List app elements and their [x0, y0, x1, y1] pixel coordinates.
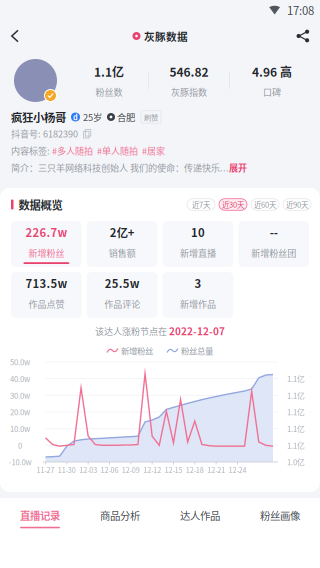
button[interactable]: 商品分析 [80, 506, 160, 530]
staticText: 0 [18, 440, 22, 451]
button[interactable]: 达人作品 [160, 506, 240, 530]
staticText: 作品评论 [104, 297, 140, 310]
staticText: 11-27 [36, 465, 54, 475]
staticText: 12-03 [79, 465, 97, 475]
button[interactable]: 3 [162, 272, 233, 318]
staticText: 新增粉丝 [28, 246, 64, 259]
button[interactable]: 近30天 [215, 199, 247, 210]
staticText: 1.1亿 [94, 63, 124, 80]
staticText: 近7天 [192, 199, 210, 210]
staticText: 11-30 [58, 465, 76, 475]
staticText: 4.96 高 [252, 63, 292, 80]
staticText: 疯狂小杨哥 [11, 109, 66, 125]
staticText: 1.1亿 [287, 423, 305, 434]
button[interactable]: 713.5w [11, 272, 82, 318]
staticText: 商品分析 [100, 508, 140, 523]
staticText: 12-18 [186, 465, 204, 475]
staticText: 20.0w [10, 406, 30, 418]
button[interactable]: -- [238, 221, 309, 267]
staticText: 10 [191, 224, 205, 240]
staticText: 灰豚指数 [171, 85, 207, 98]
button[interactable]: Back [0, 20, 30, 52]
staticText: 713.5w [25, 275, 67, 291]
button[interactable]: 近7天 [183, 199, 215, 210]
staticText: 口碑 [263, 85, 281, 98]
staticText: 1.0亿 [287, 456, 305, 468]
staticText: 12-06 [100, 465, 118, 475]
staticText: 粉丝画像 [260, 508, 300, 523]
staticText: 3 [194, 275, 201, 291]
staticText: 546.82 [169, 63, 208, 80]
staticText: 粉丝总量 [181, 344, 213, 357]
staticText: 1.1亿 [287, 373, 305, 384]
staticText: 10.0w [10, 423, 30, 434]
button[interactable]: 10 [162, 221, 233, 267]
staticText: 12-24 [228, 465, 246, 475]
staticText: 1.1亿 [287, 390, 305, 401]
staticText: -- [270, 224, 278, 240]
staticText: 17:08 [287, 2, 314, 18]
staticText: 直播记录 [20, 508, 60, 523]
staticText: 12-15 [164, 465, 182, 475]
staticText: 粉丝数 [95, 85, 122, 98]
staticText: 该达人涨粉节点在 [95, 324, 169, 337]
staticText: 12-12 [143, 465, 161, 475]
staticText: 刷赞 [144, 112, 158, 122]
staticText: 新增粉丝团 [251, 246, 296, 259]
button[interactable]: 25.5w [87, 272, 158, 318]
button[interactable]: 粉丝画像 [240, 506, 320, 530]
staticText: 合肥 [117, 110, 135, 124]
staticText: 新增粉丝 [121, 344, 153, 357]
staticText: 内容标签: [11, 144, 52, 157]
button[interactable]: 226.7w [11, 221, 82, 267]
button[interactable]: Share [286, 20, 320, 52]
staticText: 达人作品 [180, 508, 220, 523]
staticText: 226.7w [25, 224, 67, 240]
staticText: 25岁 [83, 110, 102, 124]
staticText: 抖音号: 6182390 [11, 127, 78, 140]
staticText: 2022-12-07 [169, 324, 225, 338]
staticText: 简介：三只羊网络科技创始人 我们的使命：传递快乐... [11, 161, 229, 174]
staticText: -10.0w [8, 456, 31, 468]
staticText: 25.5w [105, 275, 140, 291]
staticText: 50.0w [10, 356, 30, 368]
staticText: d [73, 112, 78, 122]
button[interactable]: 直播记录 [0, 506, 80, 530]
staticText: 30.0w [10, 390, 30, 401]
staticText: 12-09 [122, 465, 140, 475]
staticText: 灰豚数据 [144, 28, 188, 44]
button[interactable]: 展开 [229, 161, 247, 174]
staticText: 40.0w [10, 373, 30, 384]
staticText: 1.1亿 [287, 406, 305, 418]
staticText: 展开 [229, 161, 247, 174]
staticText: 2亿+ [110, 224, 135, 240]
staticText: 近60天 [254, 199, 276, 210]
button[interactable]: 近90天 [279, 199, 311, 210]
staticText: 近30天 [222, 199, 244, 210]
staticText: 近90天 [286, 199, 308, 210]
staticText: 销售额 [109, 246, 136, 259]
button[interactable]: 2亿+ [87, 221, 158, 267]
staticText: #多人随拍 #单人随拍 #居家 [52, 144, 165, 157]
staticText: 数据概览 [18, 196, 62, 213]
staticText: 新增直播 [180, 246, 216, 259]
staticText: 新增作品 [180, 297, 216, 310]
button[interactable]: 近60天 [247, 199, 279, 210]
staticText: 1.1亿 [287, 440, 305, 451]
staticText: 作品点赞 [28, 297, 64, 310]
staticText: 12-21 [207, 465, 225, 475]
